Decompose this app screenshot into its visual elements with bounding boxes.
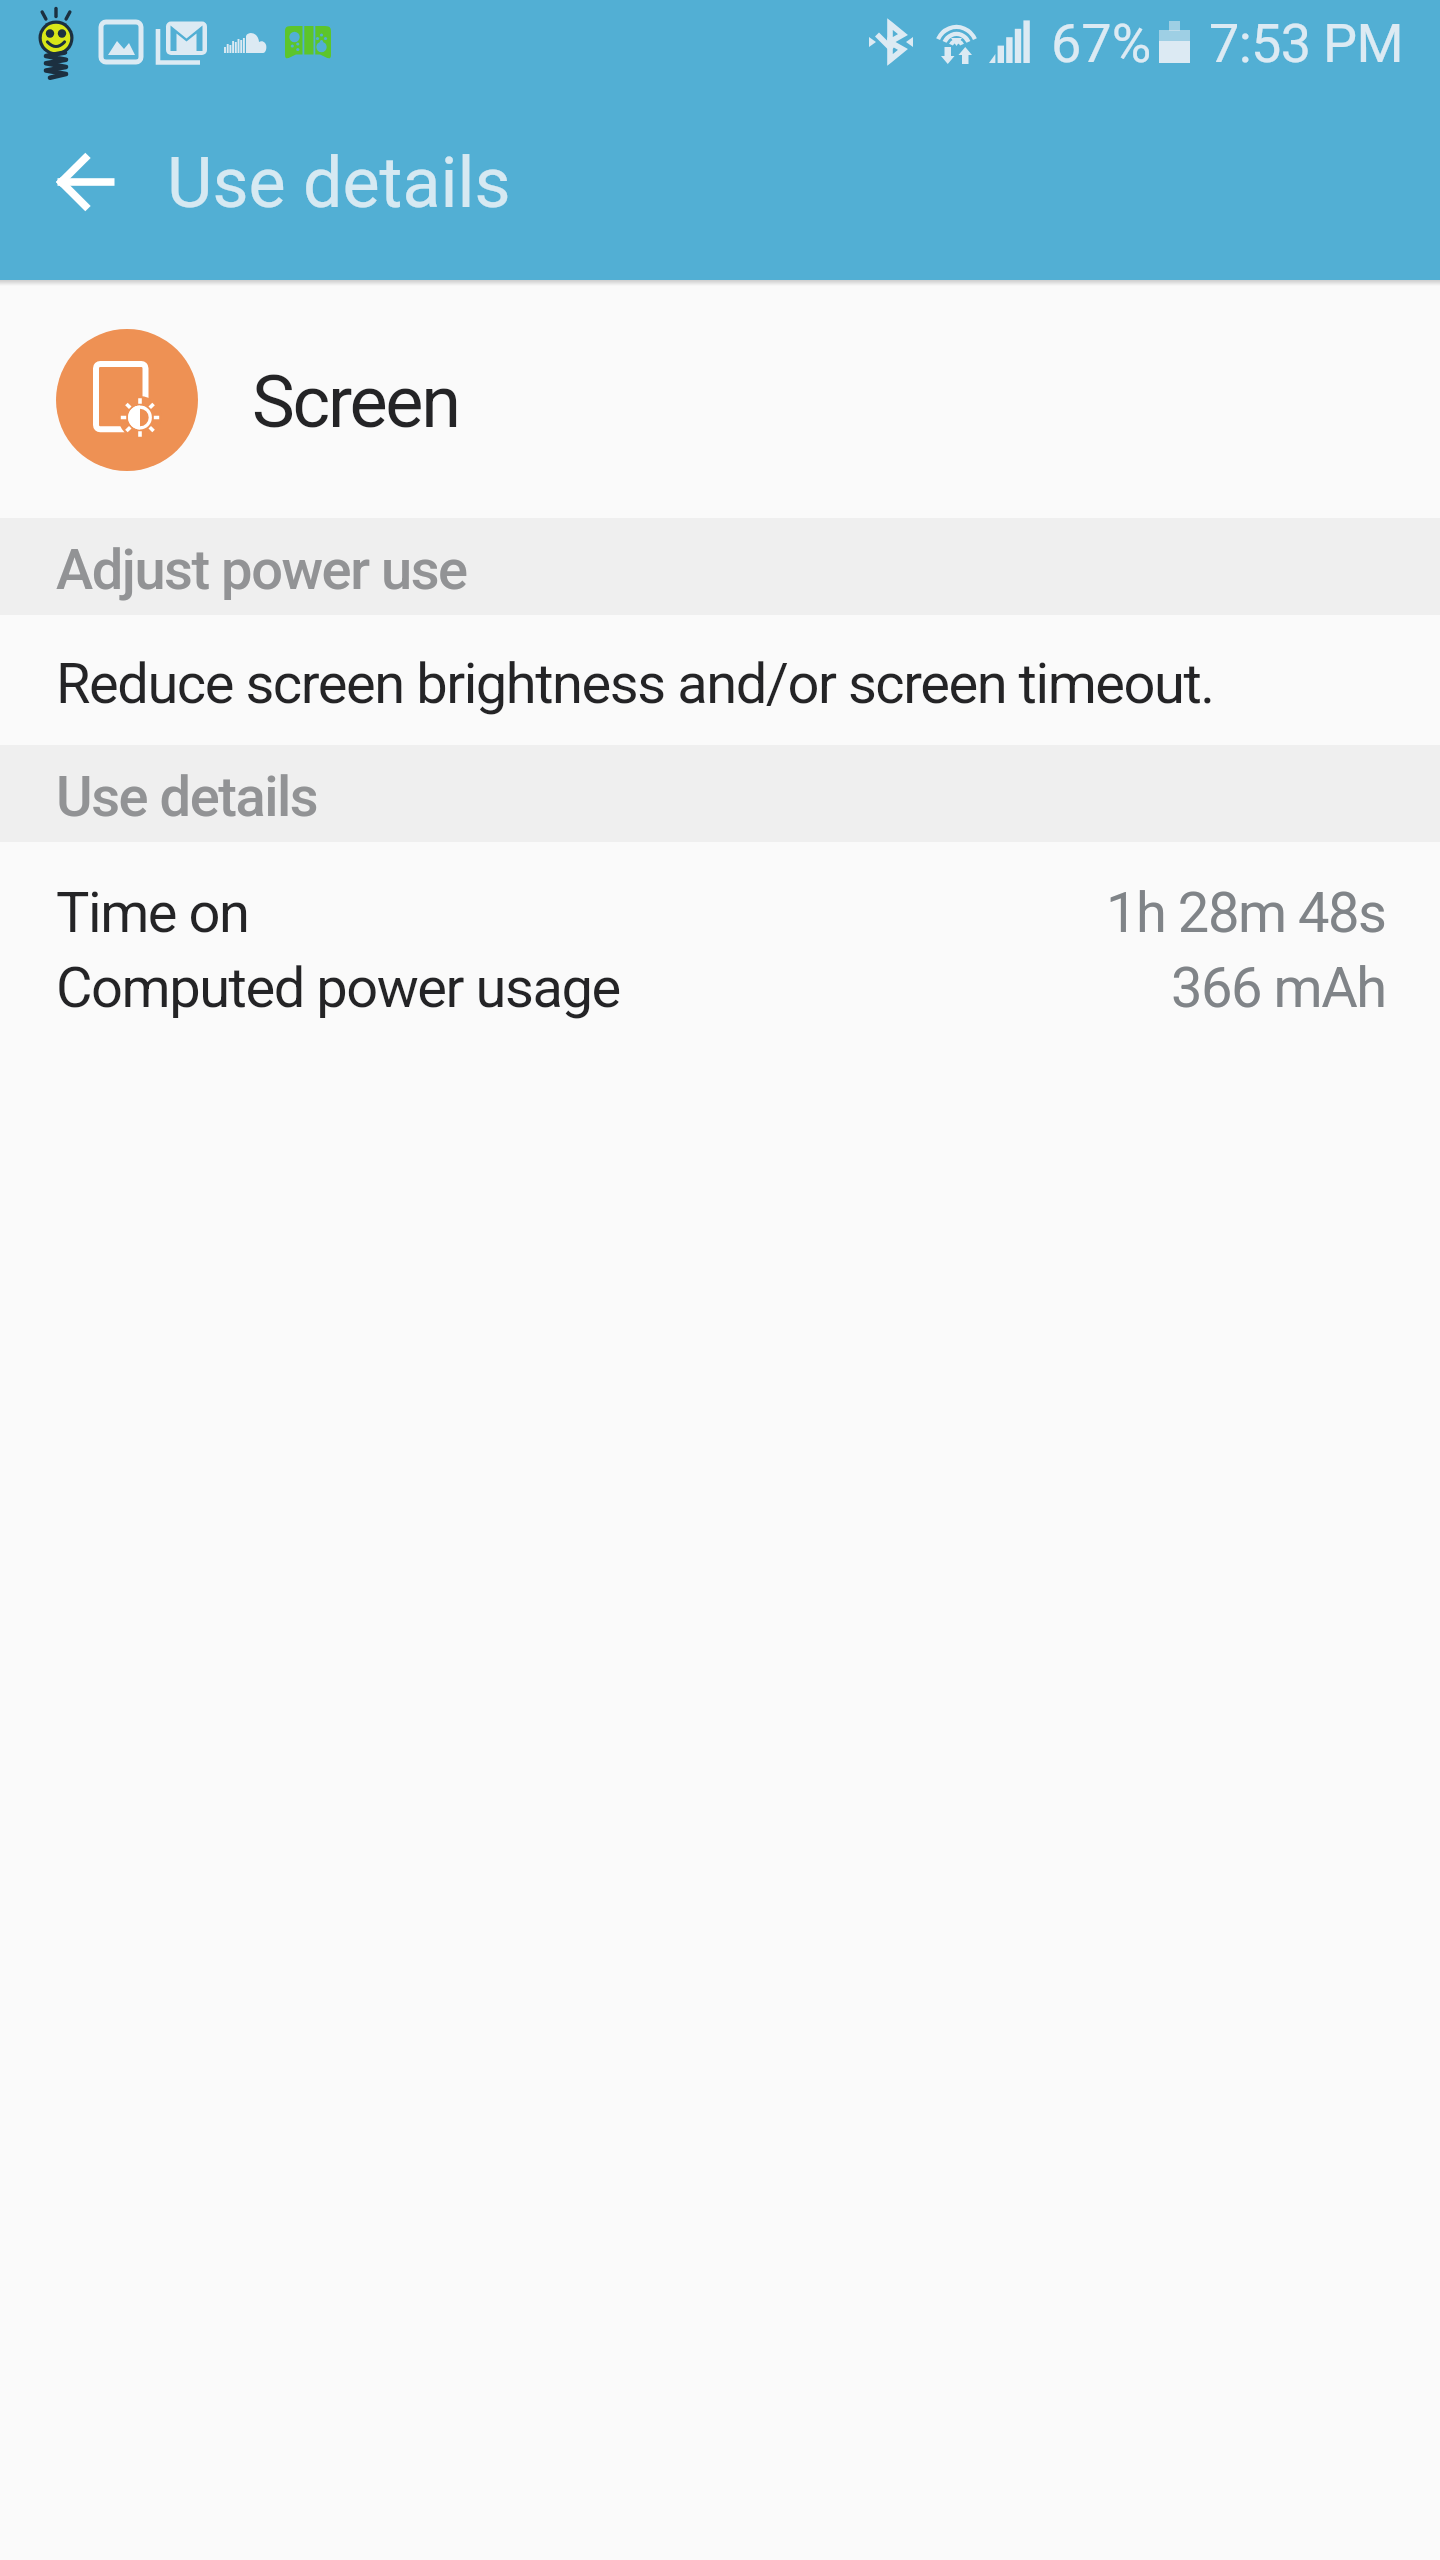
staticText: Screen bbox=[252, 360, 459, 444]
button[interactable]: Navigate up bbox=[42, 138, 130, 226]
button[interactable]: Time on bbox=[0, 856, 1440, 931]
staticText: 366 mAh bbox=[1171, 955, 1386, 1021]
staticText: Adjust power use bbox=[56, 537, 467, 603]
staticText: Reduce screen brightness and/or screen t… bbox=[56, 651, 1214, 717]
staticText: 1h 28m 48s bbox=[1106, 880, 1386, 946]
button[interactable]: Screen bbox=[0, 286, 1440, 518]
staticText: Use details bbox=[56, 764, 318, 830]
staticText: Use details bbox=[167, 142, 511, 224]
staticText: Computed power usage bbox=[56, 955, 620, 1021]
staticText: 67% bbox=[1051, 12, 1152, 75]
button[interactable]: Reduce screen brightness and/or screen t… bbox=[0, 615, 1440, 745]
staticText: Time on bbox=[56, 880, 249, 946]
button[interactable]: Computed power usage bbox=[0, 931, 1440, 1006]
staticText: 7:53 PM bbox=[1209, 12, 1403, 75]
